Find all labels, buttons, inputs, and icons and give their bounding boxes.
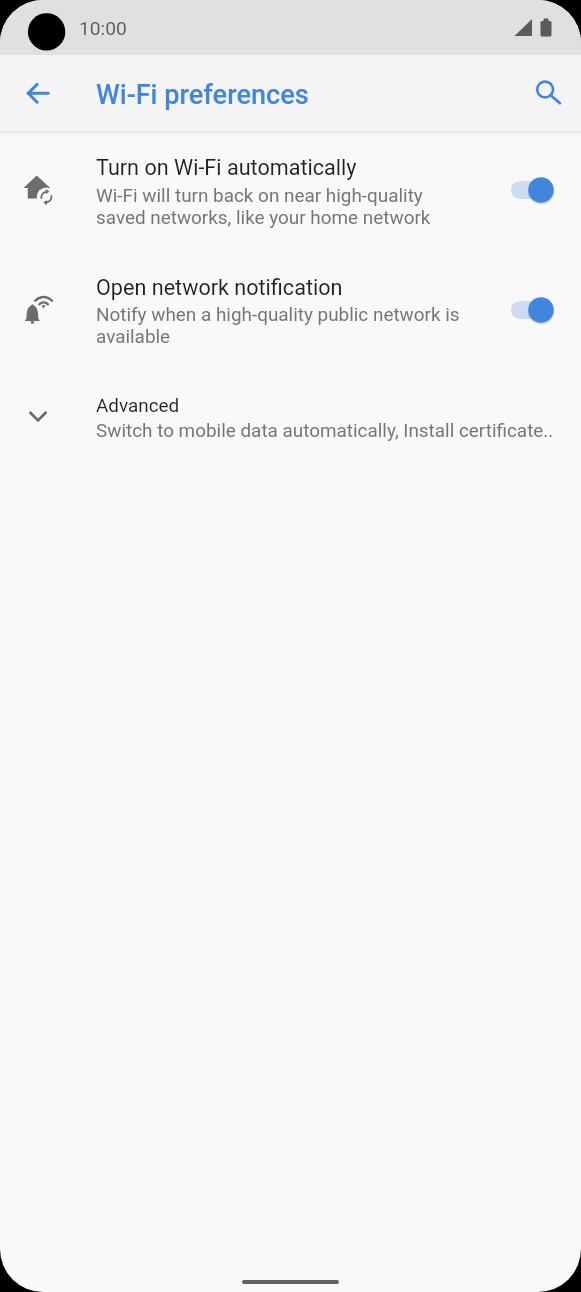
button[interactable]: Toggle: [505, 166, 567, 214]
staticText: saved networks, like your home network: [96, 206, 431, 228]
button[interactable]: Search: [521, 65, 569, 113]
button[interactable]: Open network notification: [0, 265, 581, 385]
staticText: Turn on Wi-Fi automatically: [96, 155, 357, 180]
staticText: Switch to mobile data automatically, Ins…: [96, 419, 554, 441]
button[interactable]: Turn on Wi-Fi automatically: [0, 145, 581, 265]
staticText: 10:00: [79, 17, 127, 40]
button[interactable]: Advanced: [0, 385, 581, 475]
staticText: available: [96, 325, 171, 347]
staticText: Notify when a high-quality public networ…: [96, 303, 460, 325]
button[interactable]: Back: [14, 69, 62, 117]
button[interactable]: Toggle: [505, 286, 567, 334]
staticText: Open network notification: [96, 275, 343, 300]
staticText: Advanced: [96, 394, 180, 416]
staticText: Wi-Fi preferences: [96, 79, 309, 111]
staticText: Wi-Fi will turn back on near high-qualit…: [96, 184, 423, 206]
